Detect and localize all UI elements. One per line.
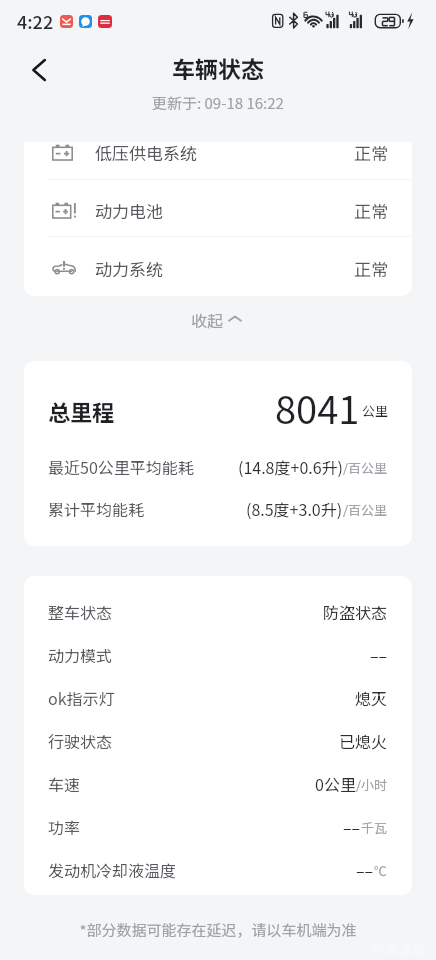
- staticText: (8.5度+3.0升): [246, 497, 343, 520]
- staticText: 正常: [354, 142, 388, 165]
- staticText: 更新于: 09-18 16:22: [152, 92, 284, 114]
- staticText: ℃: [374, 861, 388, 880]
- staticText: 动力电池: [95, 198, 163, 223]
- staticText: ok指示灯: [48, 686, 115, 709]
- staticText: 最近50公里平均能耗: [48, 455, 194, 478]
- staticText: 公里: [362, 401, 389, 420]
- button[interactable]: 动力电池: [24, 182, 412, 239]
- staticText: 0公里: [315, 772, 356, 795]
- staticText: 功率: [48, 815, 81, 838]
- staticText: 动力模式: [48, 643, 113, 666]
- button[interactable]: 动力系统: [24, 240, 412, 296]
- staticText: ––: [343, 815, 361, 838]
- staticText: /百公里: [343, 500, 388, 519]
- button[interactable]: Back: [18, 48, 62, 92]
- staticText: 收起: [191, 308, 224, 331]
- staticText: 已熄火: [339, 729, 388, 752]
- staticText: ––: [370, 643, 388, 666]
- staticText: 车速: [48, 772, 81, 795]
- button[interactable]: 低压供电系统: [24, 142, 412, 181]
- staticText: 8041: [275, 380, 360, 435]
- staticText: 整车状态: [48, 600, 113, 623]
- staticText: 行驶状态: [48, 729, 113, 752]
- staticText: 4:22: [17, 8, 54, 34]
- staticText: 低压供电系统: [95, 142, 197, 165]
- button[interactable]: 收起: [0, 295, 434, 343]
- staticText: *部分数据可能存在延迟，请以车机端为准: [0, 919, 436, 941]
- staticText: 防盗状态: [323, 600, 388, 623]
- staticText: 熄灭: [355, 686, 388, 709]
- staticText: 动力系统: [95, 256, 163, 281]
- staticText: /小时: [356, 775, 388, 794]
- staticText: 发动机冷却液温度: [48, 858, 177, 881]
- staticText: 正常: [354, 256, 388, 281]
- staticText: 千瓦: [361, 818, 388, 837]
- staticText: 累计平均能耗: [48, 497, 145, 520]
- staticText: 车辆状态: [172, 51, 264, 84]
- staticText: 正常: [354, 198, 388, 223]
- staticText: (14.8度+0.6升): [238, 455, 343, 478]
- staticText: /百公里: [343, 458, 388, 477]
- staticText: ––: [356, 858, 374, 881]
- staticText: 总里程: [48, 395, 115, 427]
